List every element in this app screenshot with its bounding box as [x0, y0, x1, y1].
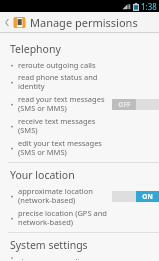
staticText: OFF [118, 100, 131, 109]
staticText: reroute outgoing calls [18, 60, 96, 70]
button[interactable]: read phone status and identity [0, 71, 159, 93]
staticText: precise location (GPS and network-based) [18, 208, 107, 228]
staticText: ON [142, 192, 153, 201]
staticText: read phone status and identity [18, 72, 98, 92]
staticText: Manage permissions [30, 15, 138, 30]
button[interactable]: precise location (GPS and network-based) [0, 207, 159, 229]
button[interactable]: Off [112, 99, 159, 110]
button[interactable]: Back [0, 12, 159, 32]
staticText: 1:38 [141, 1, 157, 12]
staticText: change your audio settings [18, 256, 110, 260]
button[interactable]: receive text messages (SMS) [0, 115, 159, 137]
staticText: read your text messages (SMS or MMS) [18, 94, 105, 114]
staticText: Telephony [10, 42, 61, 56]
button[interactable]: On [112, 191, 159, 202]
staticText: Your location [10, 168, 75, 182]
button[interactable]: edit your text messages (SMS or MMS) [0, 137, 159, 159]
staticText: edit your text messages (SMS or MMS) [18, 138, 102, 158]
button[interactable]: approximate location (network-based) [0, 185, 159, 207]
button[interactable]: reroute outgoing calls [0, 59, 159, 71]
staticText: receive text messages (SMS) [18, 116, 110, 136]
button[interactable]: change your audio settings [0, 255, 159, 261]
staticText: System settings [10, 238, 88, 252]
button[interactable]: read your text messages (SMS or MMS) [0, 93, 159, 115]
staticText: approximate location (network-based) [18, 186, 93, 206]
other: Back [3, 13, 11, 31]
